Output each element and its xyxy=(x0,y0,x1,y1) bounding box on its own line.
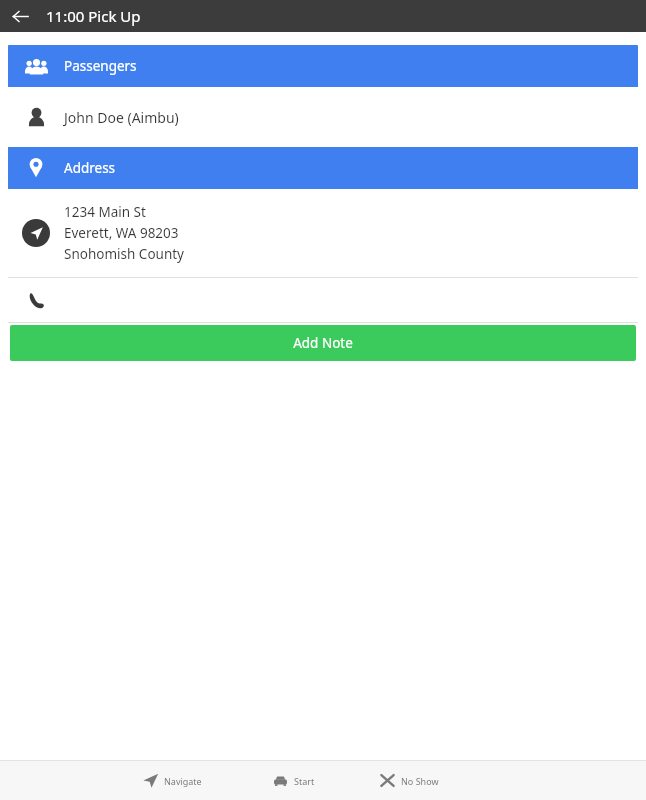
staticText: Add Note xyxy=(293,334,353,352)
staticText: Start xyxy=(294,775,315,787)
button[interactable]: Call xyxy=(8,278,638,322)
staticText: Navigate xyxy=(164,775,202,787)
button[interactable]: Navigate to address xyxy=(8,189,638,277)
button[interactable]: Start xyxy=(270,761,317,800)
button[interactable]: Add Note xyxy=(10,325,636,361)
staticText: Snohomish County xyxy=(64,245,185,263)
staticText: No Show xyxy=(401,775,439,787)
button[interactable]: No Show xyxy=(377,761,441,800)
button[interactable]: Navigate xyxy=(140,761,204,800)
staticText: Passengers xyxy=(64,57,137,75)
staticText: Everett, WA 98203 xyxy=(64,224,179,242)
staticText: 11:00 Pick Up xyxy=(46,6,141,26)
staticText: Address xyxy=(64,159,116,177)
button[interactable]: Navigate to address xyxy=(22,219,50,247)
button[interactable]: Address xyxy=(8,147,638,189)
button[interactable]: John Doe (Aimbu) xyxy=(8,87,638,147)
button[interactable]: Passengers xyxy=(8,45,638,87)
button[interactable]: Back xyxy=(6,2,34,30)
staticText: John Doe (Aimbu) xyxy=(64,108,179,127)
staticText: 1234 Main St xyxy=(64,203,146,221)
